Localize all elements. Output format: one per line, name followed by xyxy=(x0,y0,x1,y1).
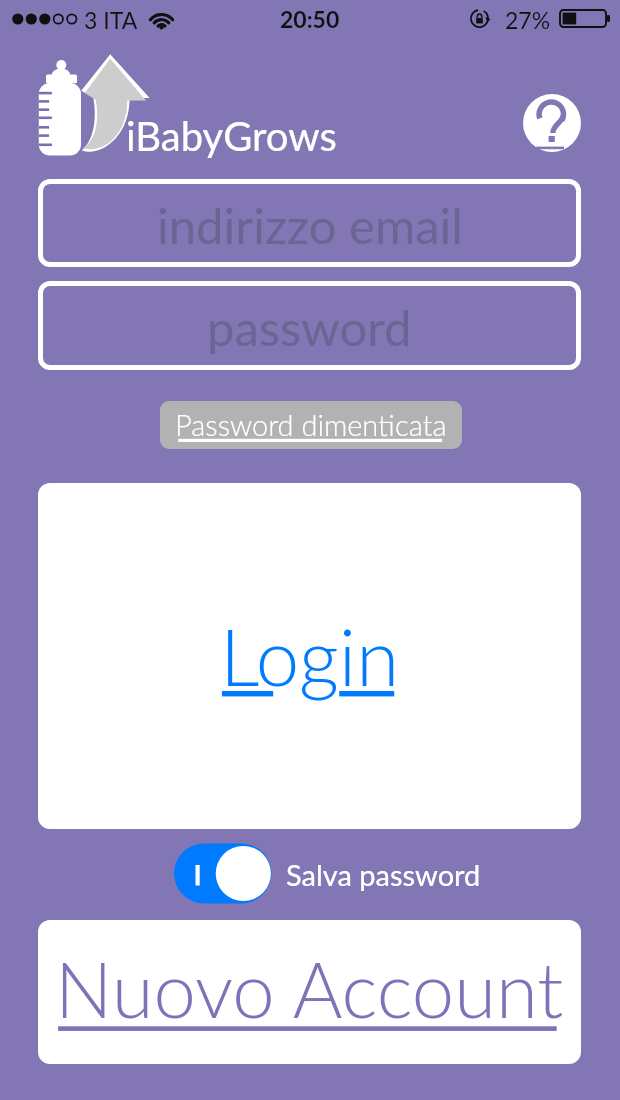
button[interactable]: password xyxy=(38,281,581,370)
button[interactable]: Nuovo Account xyxy=(38,920,581,1064)
staticText: Nuovo Account xyxy=(55,943,564,1034)
staticText: password xyxy=(207,298,412,357)
staticText: indirizzo email xyxy=(157,196,463,255)
staticText: 3 ITA xyxy=(84,6,138,34)
button[interactable]: Salva password xyxy=(174,843,272,903)
staticText: iBabyGrows xyxy=(126,112,337,160)
button[interactable]: Password dimenticata xyxy=(160,401,462,449)
button[interactable]: indirizzo email xyxy=(38,179,581,267)
staticText: Password dimenticata xyxy=(175,407,447,442)
button[interactable]: Login xyxy=(38,483,581,829)
staticText: 20:50 xyxy=(280,5,340,33)
button[interactable]: Help xyxy=(523,94,581,152)
staticText: Salva password xyxy=(286,857,481,892)
staticText: Login xyxy=(220,609,400,703)
staticText: 27% xyxy=(505,6,551,34)
